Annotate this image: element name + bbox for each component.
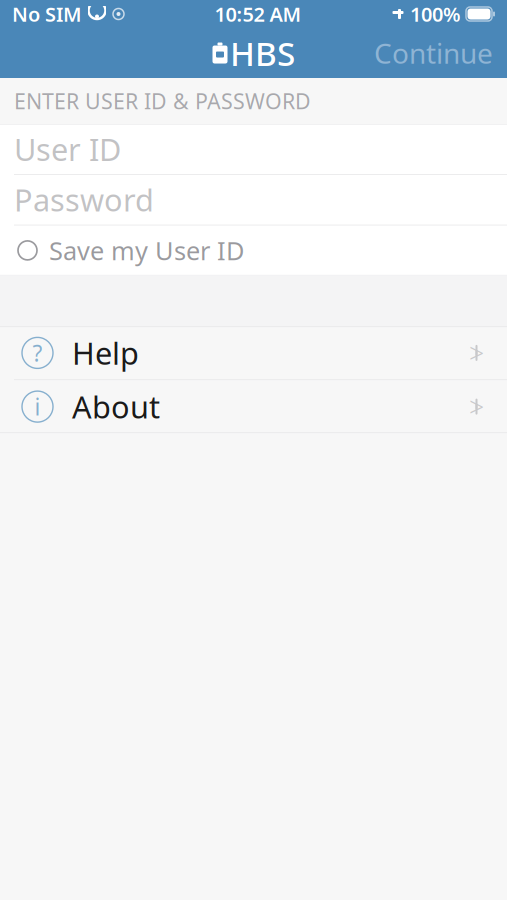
button[interactable]: Password — [0, 175, 507, 225]
staticText: User ID — [14, 129, 121, 169]
staticText: Password — [14, 179, 154, 220]
button[interactable]: ? — [0, 326, 507, 379]
staticText: i — [34, 391, 40, 422]
staticText: > — [469, 389, 484, 424]
button[interactable]: Continue — [360, 28, 507, 78]
button[interactable]: i — [0, 380, 507, 433]
staticText: Continue — [374, 34, 493, 72]
staticText: No SIM — [12, 1, 82, 27]
staticText: > — [469, 335, 484, 371]
button[interactable]: Save my User ID — [0, 225, 507, 275]
staticText: HBS — [230, 31, 295, 75]
staticText: Help — [72, 332, 139, 373]
staticText: 10:52 AM — [214, 1, 301, 27]
staticText: ENTER USER ID & PASSWORD — [14, 87, 311, 115]
staticText: 100% — [410, 1, 461, 27]
button[interactable]: User ID — [0, 124, 507, 174]
staticText: About — [72, 386, 160, 427]
staticText: ? — [32, 338, 42, 368]
staticText: Save my User ID — [49, 234, 244, 267]
